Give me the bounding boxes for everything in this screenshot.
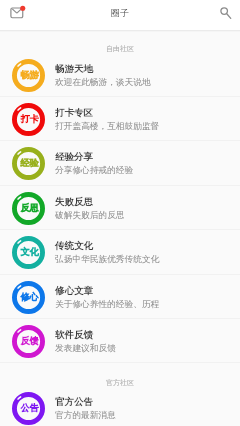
staticText: 打卡专区 — [55, 107, 93, 119]
button[interactable]: Search — [214, 1, 237, 24]
staticText: 弘扬中华民族优秀传统文化 — [55, 254, 160, 265]
staticText: 圈子 — [111, 7, 129, 18]
button[interactable]: 修心 — [0, 275, 240, 319]
button[interactable]: 公告 — [0, 386, 240, 426]
staticText: 修心 — [20, 291, 39, 302]
staticText: 软件反馈 — [55, 329, 93, 341]
staticText: 自由社区 — [106, 44, 134, 53]
button[interactable]: 畅游 — [0, 53, 240, 97]
staticText: 官方的最新消息 — [55, 410, 116, 421]
staticText: 公告 — [20, 402, 39, 413]
staticText: 传统文化 — [55, 240, 93, 252]
staticText: 打开盖高楼，互相鼓励监督 — [55, 121, 160, 132]
staticText: 经验 — [20, 157, 39, 168]
staticText: 经验分享 — [55, 151, 93, 163]
staticText: 反思 — [20, 202, 39, 213]
staticText: 畅游 — [20, 69, 39, 80]
button[interactable]: 文化 — [0, 230, 240, 274]
button[interactable]: 打卡 — [0, 97, 240, 141]
staticText: 分享修心持戒的经验 — [55, 165, 134, 176]
button[interactable]: 反馈 — [0, 319, 240, 363]
staticText: 反馈 — [20, 335, 39, 346]
staticText: 修心文章 — [55, 285, 93, 297]
staticText: 打卡 — [20, 113, 39, 124]
staticText: 官方公告 — [55, 396, 93, 408]
staticText: 畅游天地 — [55, 63, 93, 75]
staticText: 官方社区 — [106, 378, 134, 387]
button[interactable]: 反思 — [0, 186, 240, 230]
staticText: 关于修心养性的经验、历程 — [55, 299, 160, 310]
button[interactable]: Messages — [6, 1, 29, 24]
staticText: 失败反思 — [55, 196, 93, 208]
staticText: 破解失败后的反思 — [55, 210, 125, 221]
staticText: 文化 — [20, 246, 39, 257]
staticText: 欢迎在此畅游，谈天说地 — [55, 77, 151, 88]
staticText: 发表建议和反馈 — [55, 343, 116, 354]
button[interactable]: 经验 — [0, 141, 240, 185]
